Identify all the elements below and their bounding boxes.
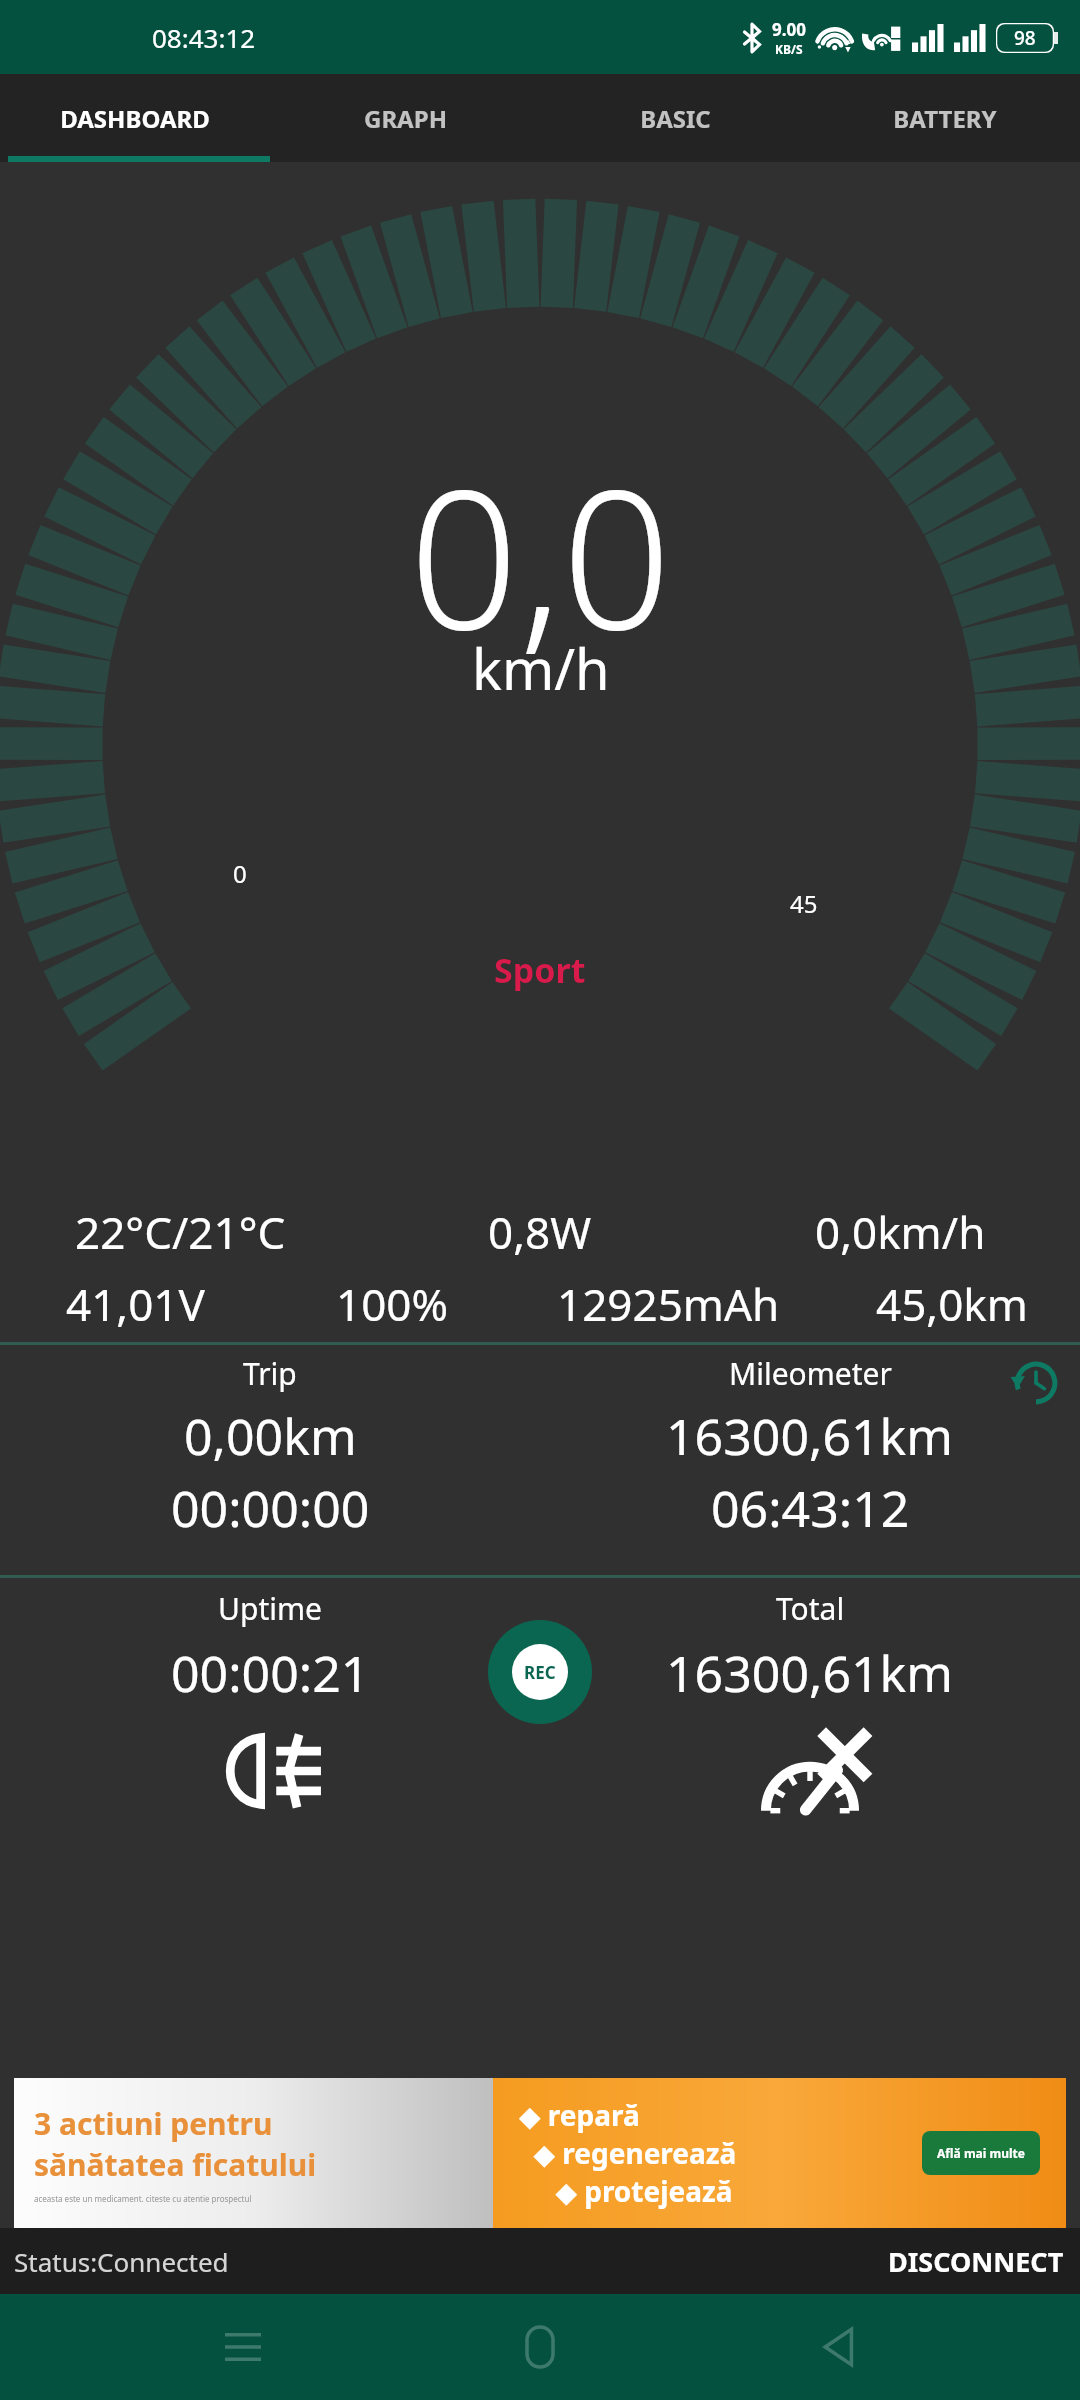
button[interactable]: BASIC bbox=[540, 74, 810, 162]
staticText: 22°C/21°C bbox=[75, 1202, 286, 1262]
button[interactable]: BATTERY bbox=[810, 74, 1080, 162]
button[interactable]: Fog lights bbox=[215, 1731, 325, 1811]
staticText: 0,00km bbox=[184, 1402, 357, 1470]
staticText: ◆ protejează bbox=[519, 2172, 733, 2210]
staticText: sănătatea ficatului bbox=[34, 2144, 317, 2185]
staticText: Status:Connected bbox=[14, 2244, 229, 2279]
staticText: 3 actiuni pentru bbox=[34, 2103, 273, 2144]
staticText: 45 bbox=[790, 887, 818, 920]
staticText: km/h bbox=[472, 630, 610, 706]
staticText: Total bbox=[776, 1588, 845, 1629]
button[interactable]: DISCONNECT bbox=[872, 2228, 1080, 2294]
staticText: GRAPH bbox=[364, 102, 447, 135]
staticText: ◆ regenerează bbox=[519, 2134, 737, 2172]
staticText: 0 bbox=[233, 857, 247, 890]
staticText: Află mai multe bbox=[937, 2145, 1025, 2161]
button[interactable]: Advertisement bbox=[14, 2078, 1066, 2228]
staticText: 00:00:00 bbox=[171, 1474, 370, 1542]
staticText: 0,8W bbox=[488, 1202, 592, 1262]
staticText: 06:43:12 bbox=[711, 1474, 910, 1542]
staticText: DISCONNECT bbox=[888, 2243, 1064, 2280]
staticText: 45,0km bbox=[876, 1274, 1028, 1334]
staticText: 16300,61km bbox=[666, 1639, 954, 1707]
staticText: ◆ repară bbox=[519, 2096, 640, 2134]
staticText: 0,0km/h bbox=[815, 1202, 986, 1262]
button[interactable]: DASHBOARD bbox=[0, 74, 270, 162]
button[interactable]: History bbox=[1008, 1355, 1064, 1411]
staticText: Mileometer bbox=[729, 1353, 892, 1394]
staticText: 00:00:21 bbox=[171, 1639, 370, 1707]
staticText: REC bbox=[524, 1661, 556, 1684]
staticText: Uptime bbox=[218, 1588, 322, 1629]
button[interactable]: GRAPH bbox=[270, 74, 540, 162]
staticText: 41,01V bbox=[66, 1274, 205, 1334]
staticText: Sport bbox=[494, 947, 586, 993]
button[interactable]: Recents bbox=[188, 2294, 298, 2400]
staticText: 16300,61km bbox=[666, 1402, 954, 1470]
staticText: 12925mAh bbox=[557, 1274, 780, 1334]
staticText: Trip bbox=[243, 1353, 297, 1394]
staticText: aceasta este un medicament. citeste cu a… bbox=[34, 2193, 252, 2204]
staticText: 100% bbox=[336, 1274, 449, 1334]
staticText: 0,0 bbox=[409, 424, 672, 686]
button[interactable]: Home bbox=[485, 2294, 595, 2400]
button[interactable]: Cruise control off bbox=[750, 1727, 870, 1817]
staticText: DASHBOARD bbox=[60, 102, 210, 135]
button[interactable]: Back bbox=[783, 2294, 893, 2400]
staticText: 08:43:12 bbox=[152, 20, 256, 55]
button[interactable]: Record bbox=[488, 1620, 592, 1724]
staticText: 98 bbox=[1014, 25, 1036, 51]
staticText: BATTERY bbox=[893, 102, 997, 135]
staticText: 9.00 bbox=[772, 18, 806, 41]
staticText: BASIC bbox=[640, 102, 711, 135]
staticText: KB/S bbox=[775, 41, 803, 57]
